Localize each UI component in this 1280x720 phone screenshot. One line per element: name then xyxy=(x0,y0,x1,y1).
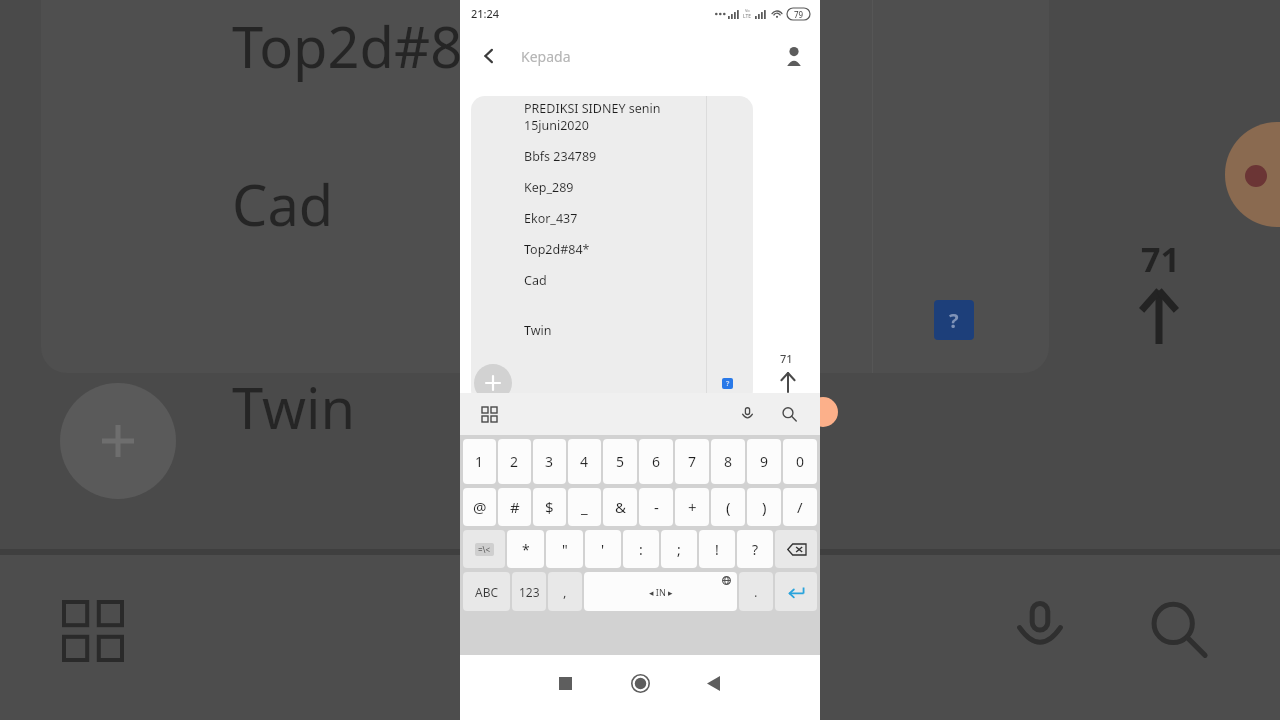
staticText: + xyxy=(688,497,697,517)
staticText: : xyxy=(639,540,643,559)
button[interactable]: 8 xyxy=(711,439,745,484)
staticText: ? xyxy=(949,307,959,334)
staticText: 2 xyxy=(510,452,519,471)
staticText: Top2d#84* xyxy=(524,241,590,258)
button[interactable]: ! xyxy=(699,530,735,568)
button[interactable]: ; xyxy=(661,530,697,568)
staticText: Twin xyxy=(232,369,356,445)
button[interactable]: 5 xyxy=(603,439,637,484)
staticText: 123 xyxy=(519,584,540,600)
button[interactable]: 3 xyxy=(533,439,566,484)
staticText: PREDIKSI SIDNEY senin xyxy=(524,100,661,117)
staticText: ) xyxy=(762,497,767,517)
button[interactable]: + xyxy=(675,488,709,526)
staticText: 9 xyxy=(760,452,769,471)
staticText: - xyxy=(654,497,659,517)
button[interactable] xyxy=(775,572,817,611)
button[interactable]: Recent apps xyxy=(547,665,583,701)
staticText: _ xyxy=(581,497,588,517)
staticText: 15juni2020 xyxy=(524,117,589,134)
staticText: 5 xyxy=(616,452,625,471)
button[interactable]: @ xyxy=(463,488,496,526)
staticText: ' xyxy=(601,540,605,559)
button[interactable]: ) xyxy=(747,488,781,526)
staticText: Kepada xyxy=(521,47,571,66)
staticText: 79 xyxy=(794,9,804,20)
staticText: 4 xyxy=(580,452,589,471)
button[interactable]: 4 xyxy=(568,439,601,484)
button[interactable]: Add attachment xyxy=(474,364,512,402)
button[interactable]: . xyxy=(739,572,773,611)
staticText: Cad xyxy=(524,272,547,289)
button[interactable]: ◂ IN ▸ xyxy=(584,572,737,611)
staticText: 71 xyxy=(780,351,793,366)
button[interactable]: _ xyxy=(568,488,601,526)
button[interactable]: , xyxy=(548,572,582,611)
staticText: Kep_289 xyxy=(524,179,574,196)
staticText: , xyxy=(563,583,567,601)
staticText: Bbfs 234789 xyxy=(524,148,597,165)
button[interactable]: 9 xyxy=(747,439,781,484)
staticText: Cad xyxy=(232,166,334,242)
staticText: ? xyxy=(752,540,759,559)
button[interactable]: 0 xyxy=(783,439,817,484)
staticText: ? xyxy=(726,379,730,389)
staticText: Vo xyxy=(745,8,750,13)
staticText: Twin xyxy=(524,322,552,339)
staticText: # xyxy=(510,497,520,517)
staticText: Ekor_437 xyxy=(524,210,578,227)
button[interactable]: 6 xyxy=(639,439,673,484)
button[interactable]: ABC xyxy=(463,572,510,611)
button[interactable]: ( xyxy=(711,488,745,526)
button[interactable]: Send xyxy=(771,365,805,399)
button[interactable]: PREDIKSI SIDNEY senin xyxy=(471,96,753,404)
button[interactable] xyxy=(775,530,817,568)
button[interactable]: * xyxy=(507,530,544,568)
staticText: & xyxy=(615,497,626,517)
button[interactable]: 1 xyxy=(463,439,496,484)
staticText: 21:24 xyxy=(471,6,500,21)
staticText: * xyxy=(522,540,530,559)
button[interactable]: " xyxy=(546,530,583,568)
staticText: @ xyxy=(473,497,487,517)
button[interactable]: =\< xyxy=(463,530,505,568)
staticText: ◂ IN ▸ xyxy=(649,586,673,598)
button[interactable]: Home xyxy=(622,665,658,701)
button[interactable]: ? xyxy=(737,530,773,568)
staticText: 7 xyxy=(688,452,697,471)
staticText: " xyxy=(562,540,568,559)
staticText: $ xyxy=(545,497,554,517)
staticText: 71 xyxy=(1141,236,1180,282)
button[interactable]: Voice input xyxy=(734,401,760,427)
staticText: 8 xyxy=(724,452,733,471)
staticText: ; xyxy=(677,540,681,559)
button[interactable]: Keyboard layouts xyxy=(477,402,501,426)
button[interactable]: : xyxy=(623,530,659,568)
button[interactable]: ' xyxy=(585,530,621,568)
staticText: 3 xyxy=(545,452,554,471)
button[interactable]: 123 xyxy=(512,572,546,611)
button[interactable]: - xyxy=(639,488,673,526)
staticText: . xyxy=(754,583,758,601)
staticText: ! xyxy=(715,540,719,559)
staticText: 0 xyxy=(796,452,805,471)
button[interactable]: Search xyxy=(776,401,802,427)
button[interactable]: / xyxy=(783,488,817,526)
button[interactable]: 2 xyxy=(498,439,531,484)
button[interactable]: # xyxy=(498,488,531,526)
button[interactable]: & xyxy=(603,488,637,526)
button[interactable]: Back xyxy=(695,665,731,701)
button[interactable]: Back xyxy=(473,40,505,72)
staticText: 1 xyxy=(475,452,484,471)
staticText: LTE xyxy=(743,13,752,20)
staticText: Top2d#8 xyxy=(232,8,463,84)
button[interactable]: 7 xyxy=(675,439,709,484)
button[interactable]: Contact xyxy=(777,39,811,73)
button[interactable]: $ xyxy=(533,488,566,526)
staticText: =\< xyxy=(478,544,491,555)
staticText: / xyxy=(797,497,803,517)
staticText: ( xyxy=(726,497,731,517)
staticText: ABC xyxy=(475,584,499,600)
staticText: 6 xyxy=(652,452,661,471)
